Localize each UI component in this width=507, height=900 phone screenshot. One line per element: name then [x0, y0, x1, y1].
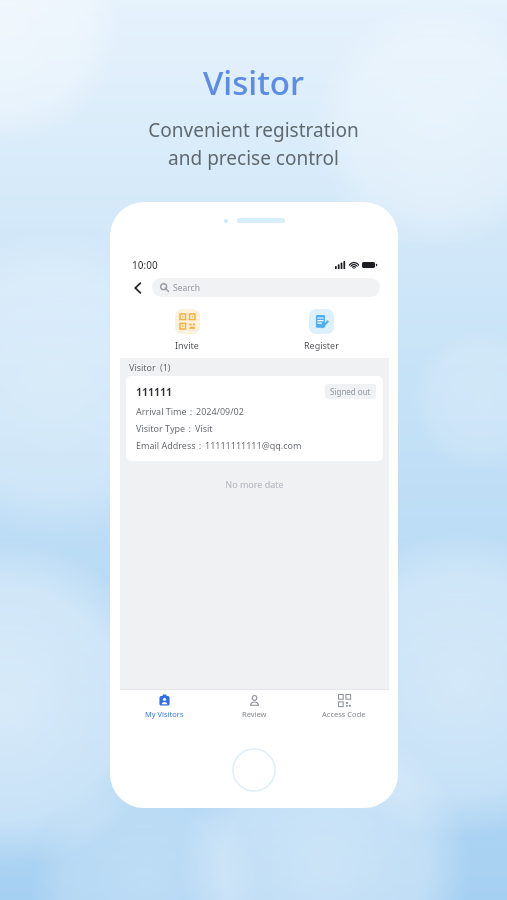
button[interactable]: Back	[129, 279, 147, 297]
staticText: 111111	[136, 385, 173, 399]
button[interactable]: Home	[232, 748, 276, 792]
staticText: (1)	[160, 361, 171, 373]
button[interactable]: Invite	[120, 301, 254, 358]
staticText: 2024/09/02	[196, 405, 244, 417]
staticText: Invite	[175, 339, 199, 351]
button[interactable]: Register	[254, 301, 389, 358]
staticText: Signed out	[330, 386, 371, 397]
staticText: Email Address：	[136, 439, 205, 451]
button[interactable]: Access Code	[299, 690, 389, 723]
staticText: Visitor	[129, 361, 156, 373]
button[interactable]: Signed out	[325, 384, 376, 399]
staticText: Visit	[195, 422, 213, 434]
button[interactable]: My Visitors	[120, 690, 209, 723]
staticText: Access Code	[322, 709, 366, 719]
button[interactable]: Search	[152, 278, 380, 297]
staticText: Visitor	[203, 60, 304, 105]
staticText: and precise control	[168, 145, 339, 171]
staticText: Visitor Type：	[136, 422, 195, 434]
button[interactable]: 111111	[126, 376, 383, 461]
staticText: 10:00	[132, 258, 158, 272]
staticText: Arrival Time：	[136, 405, 196, 417]
button[interactable]: Review	[209, 690, 299, 723]
staticText: No more date	[120, 478, 389, 490]
staticText: Convenient registration	[148, 117, 359, 143]
staticText: 11111111111@qq.com	[205, 439, 302, 451]
staticText: My Visitors	[145, 709, 184, 719]
staticText: Review	[242, 709, 267, 719]
staticText: Register	[304, 339, 339, 351]
staticText: Search	[173, 282, 200, 294]
